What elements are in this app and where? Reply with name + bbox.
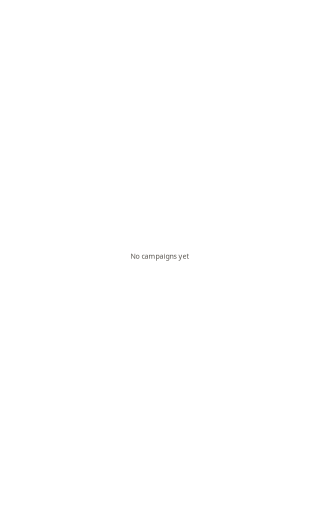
staticText: No campaigns yet xyxy=(130,251,189,261)
